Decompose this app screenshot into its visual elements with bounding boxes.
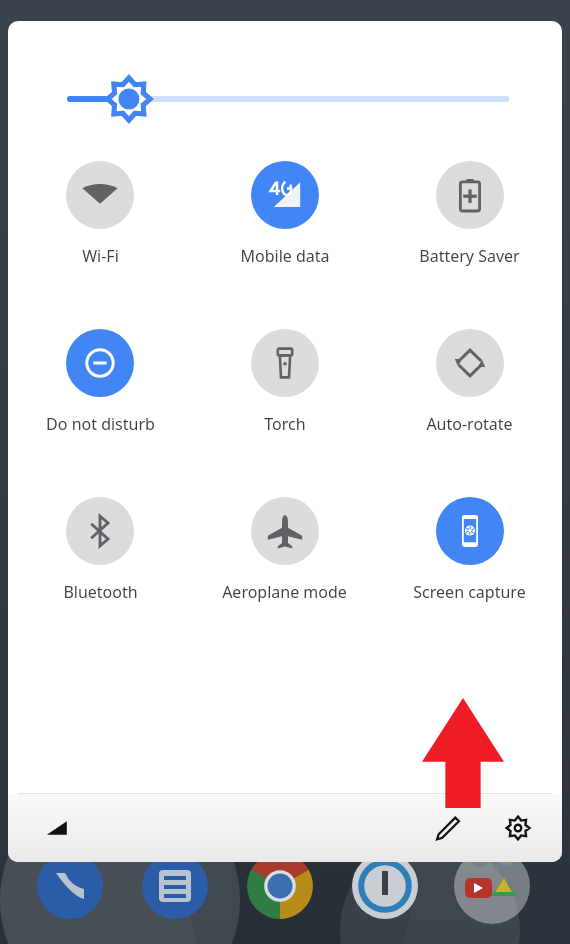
staticText: Mobile data <box>240 245 330 267</box>
button[interactable]: Aeroplane mode <box>192 495 377 605</box>
button[interactable]: Battery Saver <box>377 159 562 269</box>
button[interactable]: Auto-rotate <box>377 327 562 437</box>
staticText: Auto-rotate <box>426 413 513 435</box>
button[interactable]: Signal <box>34 806 78 850</box>
button[interactable]: Wi-Fi <box>8 159 192 269</box>
button[interactable]: Do not disturb <box>8 327 192 437</box>
button[interactable]: Torch <box>192 327 377 437</box>
staticText: Aeroplane mode <box>222 581 347 603</box>
button[interactable]: Mobile data <box>192 159 377 269</box>
button[interactable]: Screen capture <box>377 495 562 605</box>
staticText: Battery Saver <box>419 245 520 267</box>
staticText: Bluetooth <box>63 581 138 603</box>
staticText: Screen capture <box>413 581 526 603</box>
button[interactable]: Brightness <box>8 77 562 121</box>
staticText: Torch <box>264 413 306 435</box>
staticText: Wi-Fi <box>82 245 119 267</box>
button[interactable]: Bluetooth <box>8 495 192 605</box>
staticText: Do not disturb <box>46 413 155 435</box>
button[interactable]: Edit <box>424 804 472 852</box>
button[interactable]: Settings <box>494 804 542 852</box>
